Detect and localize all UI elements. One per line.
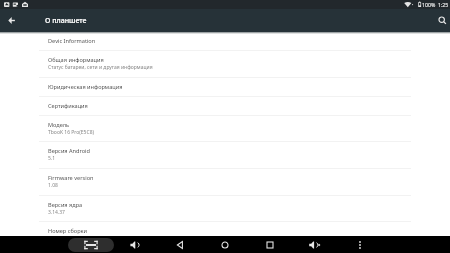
button[interactable]: Home — [217, 237, 233, 253]
staticText: 100% — [422, 1, 436, 8]
staticText: 1.08 — [48, 182, 58, 189]
button[interactable]: Номер сборки — [39, 221, 411, 236]
button[interactable]: Юридическая информация — [39, 77, 411, 96]
staticText: Firmware version — [48, 174, 94, 182]
button[interactable]: Search — [437, 15, 448, 26]
staticText: TbooK 16 Pro(E5C8) — [48, 129, 94, 136]
button[interactable]: Recent apps — [262, 237, 278, 253]
button[interactable]: Volume down — [126, 237, 142, 253]
button[interactable]: Сертификация — [39, 96, 411, 115]
button[interactable]: Общая информация — [39, 50, 411, 77]
staticText: Версия ядра — [48, 201, 83, 209]
staticText: Номер сборки — [48, 227, 87, 235]
staticText: Devic Information — [48, 37, 96, 45]
staticText: 3.14.37 — [48, 209, 65, 216]
button[interactable]: Devic Information — [39, 32, 411, 50]
staticText: О планшете — [45, 16, 87, 26]
button[interactable]: Версия ядра — [39, 195, 411, 221]
button[interactable]: Back — [6, 15, 17, 26]
staticText: Модель — [48, 121, 70, 129]
button[interactable]: Resize window — [68, 238, 114, 252]
button[interactable]: Firmware version — [39, 168, 411, 195]
button[interactable]: Версия Android — [39, 141, 411, 168]
staticText: Статус батареи, сети и другая информация — [48, 64, 153, 71]
staticText: Версия Android — [48, 147, 90, 155]
staticText: Общая информация — [48, 56, 104, 64]
staticText: Юридическая информация — [48, 83, 123, 91]
staticText: Сертификация — [48, 102, 88, 110]
staticText: 5.1 — [48, 155, 56, 162]
button[interactable]: Back — [172, 237, 188, 253]
button[interactable]: Volume up — [307, 237, 323, 253]
button[interactable]: More options — [352, 237, 368, 253]
staticText: 1:25 — [438, 1, 449, 8]
button[interactable]: Модель — [39, 115, 411, 141]
